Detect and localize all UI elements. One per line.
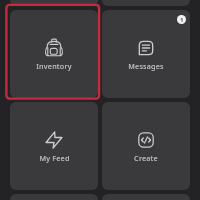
staticText: Inventory [36, 61, 72, 71]
button[interactable]: My Feed [10, 102, 98, 190]
button[interactable]: Messages [102, 10, 190, 98]
button[interactable]: Create [102, 102, 190, 190]
staticText: 1 [180, 16, 184, 24]
staticText: Create [134, 153, 158, 163]
staticText: Messages [128, 61, 164, 71]
staticText: My Feed [39, 153, 70, 163]
button[interactable]: Inventory [10, 10, 98, 98]
